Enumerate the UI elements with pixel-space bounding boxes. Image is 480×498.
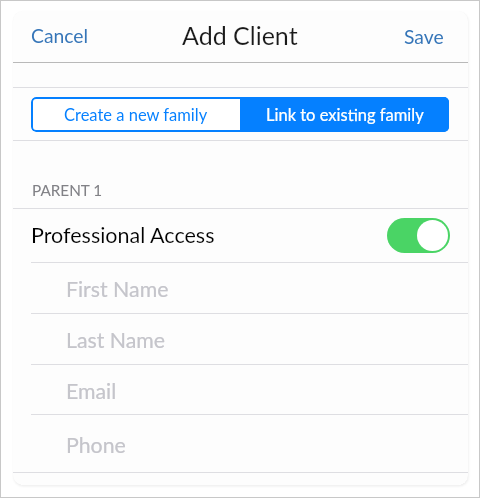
staticText: Cancel — [31, 24, 89, 47]
staticText: Link to existing family — [266, 105, 424, 125]
button[interactable]: Cancel — [21, 16, 99, 55]
staticText: Last Name — [66, 327, 166, 353]
button[interactable]: Create a new family — [31, 97, 240, 132]
button[interactable]: Link to existing family — [240, 97, 449, 132]
staticText: Save — [404, 25, 444, 48]
button[interactable]: Professional Access — [13, 209, 468, 262]
button[interactable]: Email — [13, 365, 468, 414]
button[interactable]: Phone — [13, 415, 468, 472]
staticText: Email — [66, 378, 117, 404]
staticText: Add Client — [182, 20, 298, 50]
staticText: Create a new family — [64, 105, 208, 125]
staticText: Phone — [66, 432, 126, 458]
button[interactable]: First Name — [13, 263, 468, 313]
staticText: PARENT 1 — [32, 181, 103, 199]
button[interactable]: Last Name — [13, 314, 468, 364]
staticText: First Name — [66, 276, 169, 302]
button[interactable]: Professional Access toggle — [387, 218, 450, 253]
staticText: Professional Access — [31, 222, 215, 248]
button[interactable]: Save — [394, 17, 454, 56]
